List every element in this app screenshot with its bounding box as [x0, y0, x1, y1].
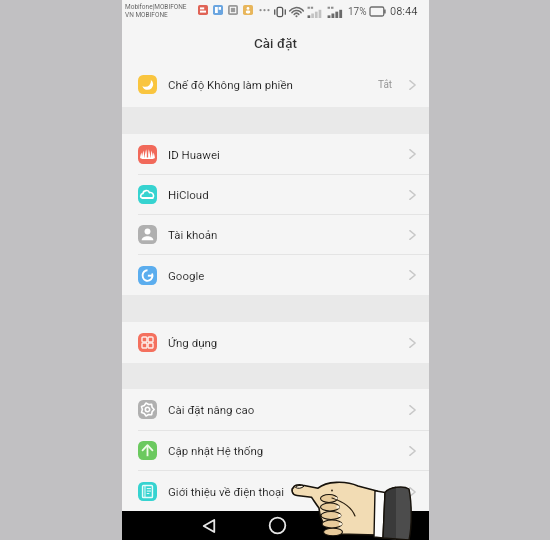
button[interactable]: Ứng dụng: [122, 322, 429, 363]
button[interactable]: Giới thiệu về điện thoại: [122, 471, 429, 512]
staticText: VN MOBIFONE: [125, 11, 168, 19]
button[interactable]: Home: [259, 511, 295, 540]
staticText: Ứng dụng: [168, 336, 218, 349]
button[interactable]: ID Huawei: [122, 134, 429, 174]
staticText: Cài đặt: [254, 35, 297, 51]
button[interactable]: Tài khoản: [122, 215, 429, 254]
staticText: ID Huawei: [168, 148, 220, 161]
button[interactable]: HiCloud: [122, 175, 429, 214]
staticText: Tắt: [378, 79, 393, 91]
button[interactable]: Cập nhật Hệ thống: [122, 431, 429, 470]
staticText: Cài đặt nâng cao: [168, 403, 255, 416]
staticText: Mobifone|MOBIFONE: [125, 3, 187, 11]
button[interactable]: Google: [122, 255, 429, 295]
button[interactable]: Cài đặt nâng cao: [122, 389, 429, 430]
staticText: Cập nhật Hệ thống: [168, 444, 264, 457]
staticText: Chế độ Không làm phiền: [168, 78, 293, 91]
staticText: 08:44: [390, 5, 418, 18]
staticText: Giới thiệu về điện thoại: [168, 485, 285, 498]
button[interactable]: Back: [191, 511, 227, 540]
staticText: 17%: [348, 6, 367, 18]
staticText: Google: [168, 269, 205, 282]
staticText: Tài khoản: [168, 228, 218, 241]
button[interactable]: Chế độ Không làm phiền: [122, 62, 429, 107]
staticText: HiCloud: [168, 188, 209, 201]
